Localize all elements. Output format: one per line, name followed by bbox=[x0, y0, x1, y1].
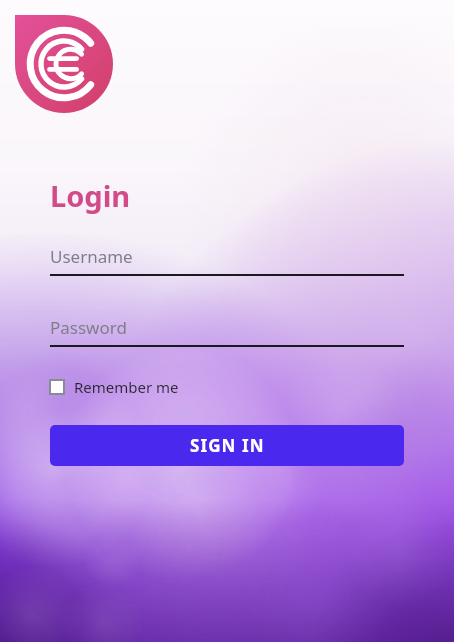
button[interactable]: Username bbox=[50, 245, 404, 276]
staticText: Username bbox=[50, 245, 133, 268]
staticText: SIGN IN bbox=[190, 434, 265, 457]
other: App logo bbox=[15, 15, 113, 113]
staticText: Remember me bbox=[74, 377, 179, 397]
button[interactable]: SIGN IN bbox=[50, 425, 404, 466]
button[interactable]: Remember me bbox=[50, 377, 179, 397]
staticText: Login bbox=[50, 176, 131, 215]
staticText: Password bbox=[50, 316, 127, 339]
button[interactable]: Password bbox=[50, 316, 404, 347]
